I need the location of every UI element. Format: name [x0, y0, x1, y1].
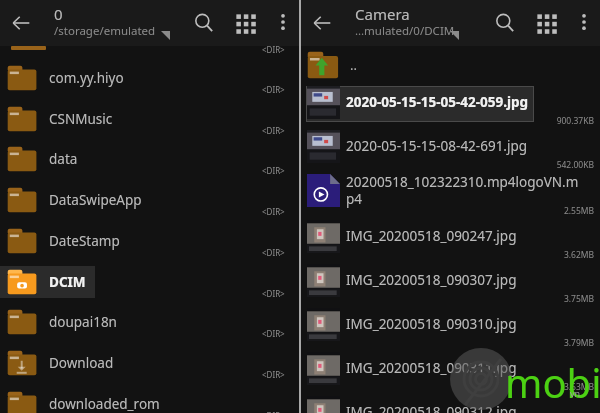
button[interactable]: Back: [309, 10, 335, 36]
button[interactable]: CSNMusic: [0, 99, 299, 139]
staticText: 2.55MB: [524, 205, 594, 217]
button[interactable]: 20200518_102322310.mp4logoVN.m p4: [301, 172, 600, 218]
button[interactable]: doupai18n: [0, 302, 299, 342]
staticText: DCIM: [49, 273, 86, 291]
staticText: 3.79MB: [524, 337, 594, 349]
staticText: <DIR>: [262, 165, 285, 176]
button[interactable]: Back: [8, 10, 34, 36]
staticText: mobi: [505, 355, 600, 409]
staticText: <DIR>: [262, 125, 285, 136]
staticText: 3.75MB: [524, 293, 594, 305]
staticText: <DIR>: [262, 288, 285, 299]
button[interactable]: IMG_20200518_090247.jpg: [301, 218, 600, 262]
staticText: <DIR>: [262, 44, 285, 55]
staticText: Download: [49, 354, 114, 372]
staticText: 542.00KB: [524, 159, 594, 171]
staticText: com.yy.hiyo: [49, 69, 124, 87]
button[interactable]: Search: [493, 11, 517, 35]
button[interactable]: downloaded_rom: [0, 384, 299, 413]
staticText: DateStamp: [49, 232, 120, 250]
button[interactable]: data: [0, 139, 299, 179]
button[interactable]: IMG_20200518_090311.jpg: [301, 350, 600, 394]
staticText: 3.62MB: [524, 249, 594, 261]
staticText: <DIR>: [262, 369, 285, 380]
staticText: doupai18n: [49, 313, 117, 331]
button[interactable]: IMG_20200518_090307.jpg: [301, 262, 600, 306]
staticText: <DIR>: [262, 328, 285, 339]
button[interactable]: 2020-05-15-15-08-42-691.jpg: [301, 128, 600, 172]
button[interactable]: Grid view: [233, 11, 257, 35]
staticText: /storage/emulated: [54, 23, 156, 39]
staticText: 900.37KB: [524, 115, 594, 127]
staticText: IMG_20200518_090307.jpg: [346, 271, 517, 289]
staticText: IMG_20200518_090312.jpg: [346, 403, 517, 413]
staticText: 20200518_102322310.mp4logoVN.m p4: [346, 173, 579, 208]
button[interactable]: DataSwipeApp: [0, 180, 299, 220]
staticText: 0: [54, 4, 63, 24]
staticText: 2020-05-15-15-08-42-691.jpg: [346, 137, 528, 155]
staticText: 2020-05-15-15-05-42-059.jpg: [346, 93, 529, 111]
staticText: IMG_20200518_090247.jpg: [346, 227, 517, 245]
button[interactable]: IMG_20200518_090312.jpg: [301, 394, 600, 413]
staticText: Camera: [355, 4, 410, 24]
button[interactable]: DateStamp: [0, 221, 299, 261]
staticText: vn: [570, 387, 581, 399]
staticText: 3.63MB: [524, 381, 594, 393]
button[interactable]: IMG_20200518_090310.jpg: [301, 306, 600, 350]
button[interactable]: com.yy.hiyo: [0, 58, 299, 98]
button[interactable]: ..: [301, 46, 600, 84]
button[interactable]: 2020-05-15-15-05-42-059.jpg: [301, 84, 600, 128]
staticText: IMG_20200518_090311.jpg: [346, 359, 517, 377]
button[interactable]: Download: [0, 343, 299, 383]
staticText: downloaded_rom: [49, 395, 160, 413]
staticText: <DIR>: [262, 410, 285, 413]
button[interactable]: More options: [272, 11, 294, 33]
button[interactable]: Grid view: [534, 11, 558, 35]
staticText: CSNMusic: [49, 110, 113, 128]
button[interactable]: Search: [192, 11, 216, 35]
staticText: DataSwipeApp: [49, 191, 142, 209]
staticText: <DIR>: [262, 84, 285, 95]
staticText: <DIR>: [262, 247, 285, 258]
staticText: ..: [350, 56, 357, 74]
staticText: <DIR>: [262, 206, 285, 217]
staticText: data: [49, 150, 78, 168]
staticText: …mulated/0/DCIM: [355, 23, 455, 39]
button[interactable]: DCIM: [0, 262, 299, 302]
staticText: IMG_20200518_090310.jpg: [346, 315, 517, 333]
button[interactable]: More options: [573, 11, 595, 33]
